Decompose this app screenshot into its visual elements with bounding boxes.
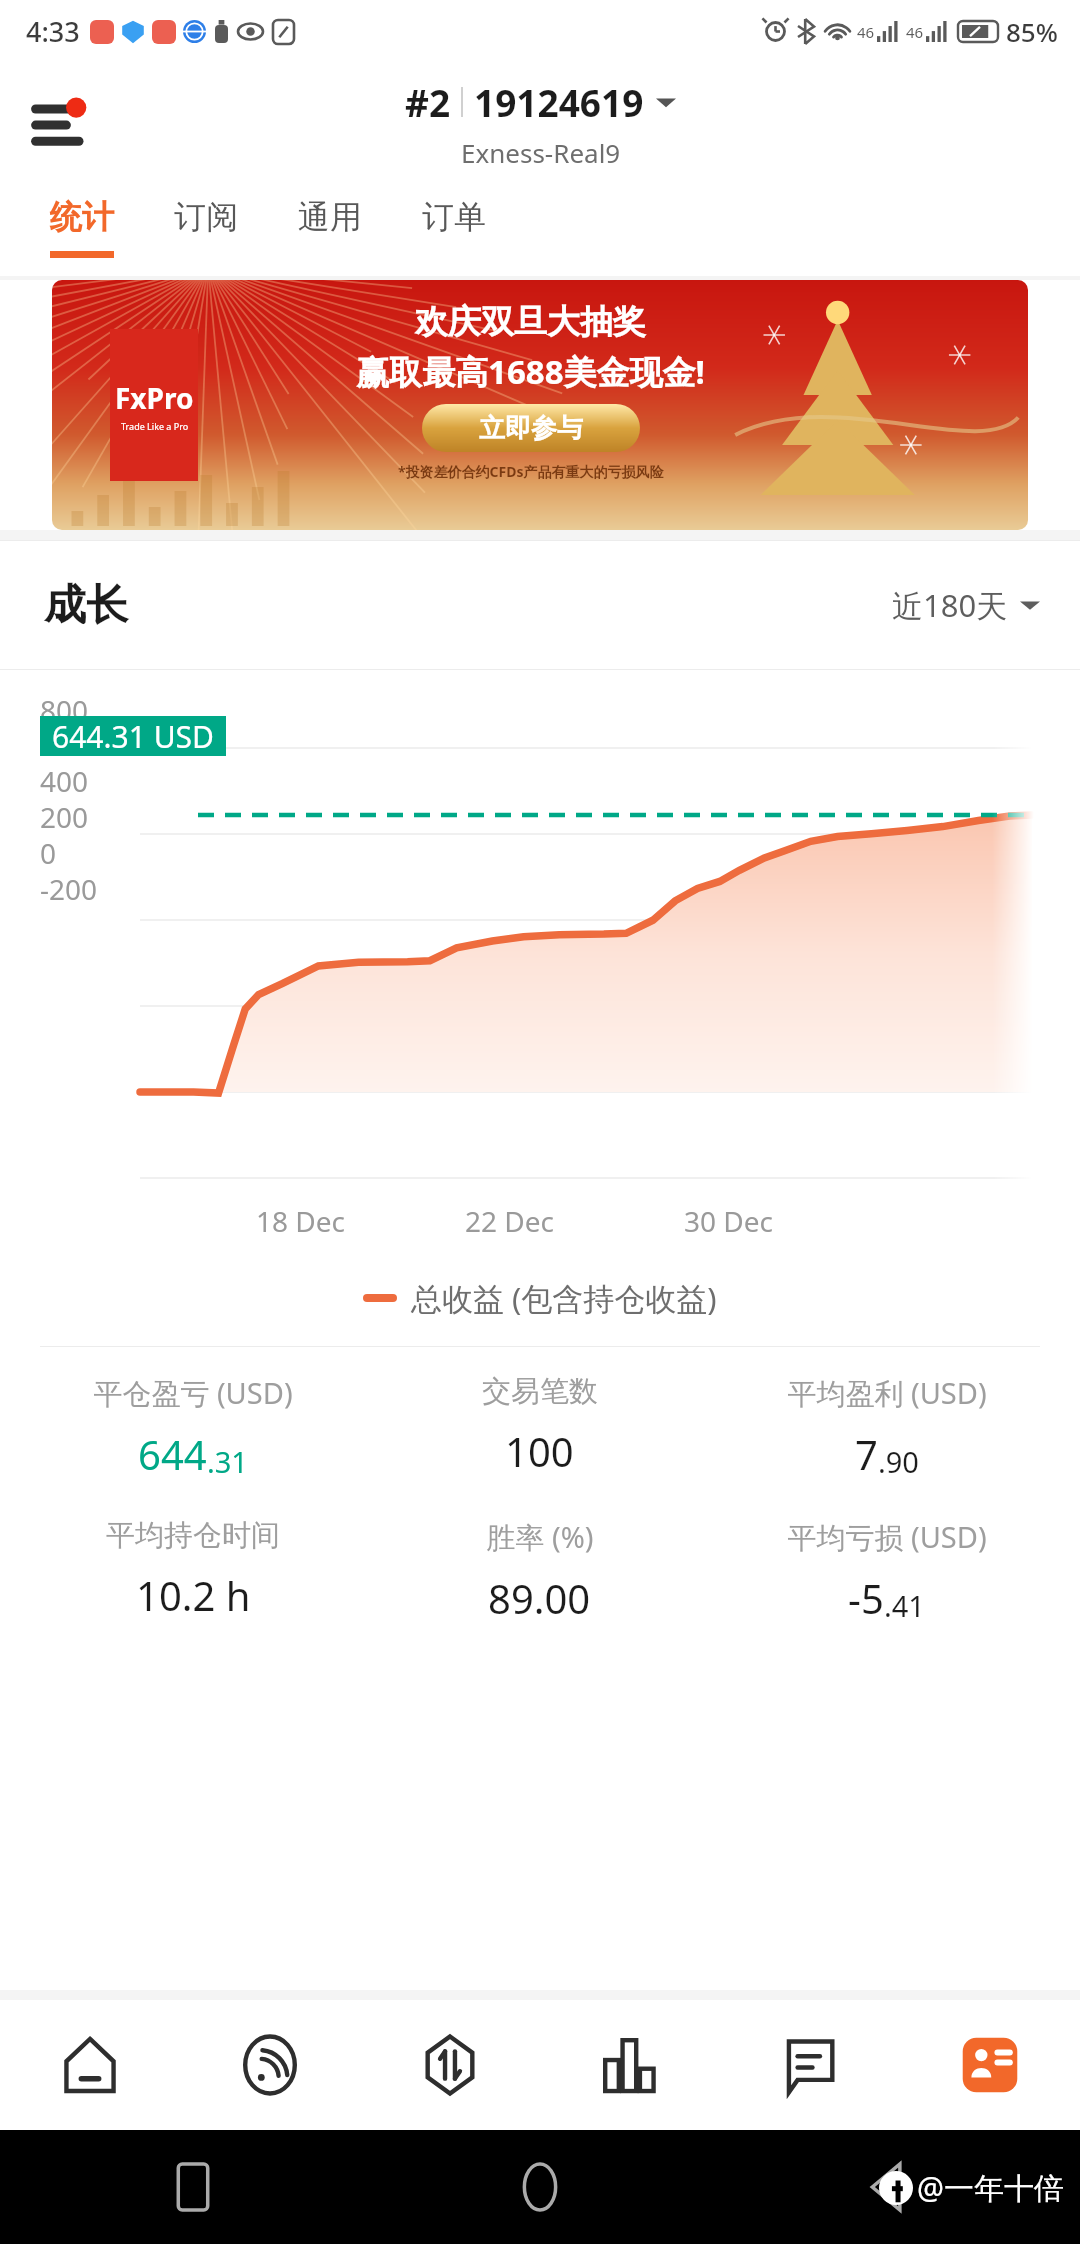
button[interactable]: 胜率 (%): [366, 1517, 713, 1625]
other: Recents: [170, 2164, 216, 2210]
button[interactable]: Profile: [900, 2000, 1080, 2130]
staticText: 46: [857, 22, 875, 42]
button[interactable]: 平均持仓时间: [20, 1517, 366, 1622]
button[interactable]: Signals: [180, 2000, 360, 2130]
staticText: 7: [855, 1427, 878, 1481]
staticText: Trade Like a Pro: [121, 420, 189, 432]
staticText: #2: [405, 77, 451, 127]
staticText: 近180天: [892, 584, 1008, 626]
staticText: 交易笔数: [482, 1373, 598, 1410]
staticText: 成长: [44, 579, 128, 632]
button[interactable]: Chat: [720, 2000, 900, 2130]
staticText: 0: [40, 834, 57, 872]
staticText: 800: [40, 691, 89, 729]
button[interactable]: 立即参与: [422, 404, 640, 452]
button[interactable]: Charts: [540, 2000, 720, 2130]
staticText: 46: [906, 22, 924, 42]
staticText: 400: [40, 762, 89, 800]
staticText: -5: [848, 1571, 884, 1625]
staticText: 644.31 USD: [52, 716, 214, 756]
staticText: 85%: [1006, 14, 1058, 49]
staticText: 89.00: [488, 1571, 591, 1625]
button[interactable]: Trade: [360, 2000, 540, 2130]
button[interactable]: 平均盈利 (USD): [713, 1373, 1060, 1481]
staticText: 30 Dec: [684, 1202, 773, 1240]
button[interactable]: 订阅: [144, 184, 268, 276]
staticText: 订阅: [174, 197, 238, 237]
staticText: Exness-Real9: [461, 135, 621, 170]
staticText: 600: [40, 726, 89, 764]
staticText: 平均持仓时间: [106, 1517, 280, 1554]
button[interactable]: 近180天: [892, 584, 1040, 626]
staticText: 平仓盈亏 (USD): [93, 1373, 293, 1413]
staticText: -200: [40, 870, 98, 908]
staticText: 欢庆双旦大抽奖: [415, 301, 646, 343]
staticText: 22 Dec: [465, 1202, 554, 1240]
staticText: 644: [138, 1427, 207, 1481]
other: Back: [864, 2164, 910, 2210]
staticText: @一年十倍: [917, 2167, 1064, 2208]
button[interactable]: 订单: [392, 184, 516, 276]
staticText: *投资差价合约CFDs产品有重大的亏损风险: [398, 462, 664, 481]
button[interactable]: 平均亏损 (USD): [713, 1517, 1060, 1625]
button[interactable]: FxPro: [52, 280, 1028, 530]
button[interactable]: 通用: [268, 184, 392, 276]
staticText: 统计: [50, 197, 114, 237]
button[interactable]: 交易笔数: [366, 1373, 713, 1478]
staticText: 18 Dec: [256, 1202, 345, 1240]
button[interactable]: Menu: [30, 88, 100, 158]
staticText: 通用: [298, 197, 362, 237]
button[interactable]: 统计: [20, 184, 144, 276]
staticText: .41: [884, 1586, 925, 1625]
staticText: 总收益 (包含持仓收益): [411, 1277, 717, 1319]
staticText: 4:33: [26, 13, 80, 50]
staticText: .90: [878, 1442, 919, 1481]
staticText: .31: [207, 1442, 248, 1481]
button[interactable]: Home: [0, 2000, 180, 2130]
staticText: FxPro: [115, 379, 194, 417]
staticText: 平均盈利 (USD): [787, 1373, 987, 1413]
staticText: 订单: [422, 197, 486, 237]
staticText: 赢取最高1688美金现金!: [356, 349, 705, 394]
staticText: 平均亏损 (USD): [787, 1517, 987, 1557]
staticText: 100: [505, 1424, 574, 1478]
other: Home: [517, 2164, 563, 2210]
staticText: 19124619: [474, 77, 644, 127]
button[interactable]: 平仓盈亏 (USD): [20, 1373, 366, 1481]
staticText: 立即参与: [479, 412, 583, 445]
staticText: 200: [40, 798, 89, 836]
staticText: 胜率 (%): [486, 1517, 594, 1557]
staticText: 10.2 h: [136, 1568, 251, 1622]
